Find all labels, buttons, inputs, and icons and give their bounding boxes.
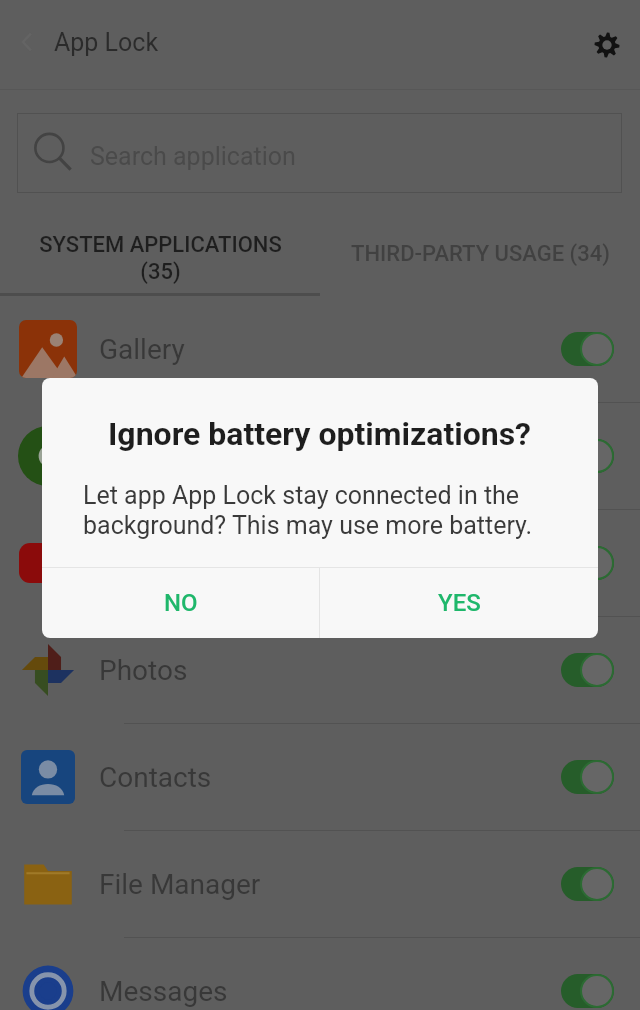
- button[interactable]: Search application: [17, 113, 622, 193]
- staticText: THIRD-PARTY USAGE (34): [351, 241, 610, 267]
- staticText: Gallery: [99, 333, 185, 366]
- button[interactable]: SYSTEM APPLICATIONS (35): [0, 193, 320, 296]
- staticText: Photos: [99, 654, 188, 687]
- staticText: Let app App Lock stay connected in the b…: [83, 481, 568, 540]
- staticText: YouTube: [99, 547, 208, 580]
- button[interactable]: Contacts: [0, 724, 640, 830]
- staticText: Search application: [90, 142, 296, 171]
- button[interactable]: NO: [42, 568, 319, 638]
- staticText: NO: [164, 589, 198, 617]
- button[interactable]: Messages: [0, 938, 640, 1010]
- button[interactable]: File Manager: [0, 831, 640, 937]
- button[interactable]: THIRD-PARTY USAGE (34): [320, 193, 640, 296]
- button[interactable]: Gallery: [0, 296, 640, 402]
- button[interactable]: Maps: [0, 403, 640, 509]
- button[interactable]: Settings: [574, 12, 640, 78]
- button[interactable]: YES: [320, 568, 598, 638]
- staticText: SYSTEM APPLICATIONS (35): [39, 232, 282, 284]
- staticText: Ignore battery optimizations?: [108, 415, 532, 453]
- button[interactable]: Photos: [0, 617, 640, 723]
- staticText: File Manager: [99, 868, 261, 901]
- button[interactable]: YouTube: [0, 510, 640, 616]
- staticText: Maps: [99, 440, 169, 473]
- staticText: Messages: [99, 975, 228, 1008]
- staticText: YES: [438, 589, 481, 617]
- staticText: Contacts: [99, 761, 212, 794]
- staticText: App Lock: [54, 28, 159, 57]
